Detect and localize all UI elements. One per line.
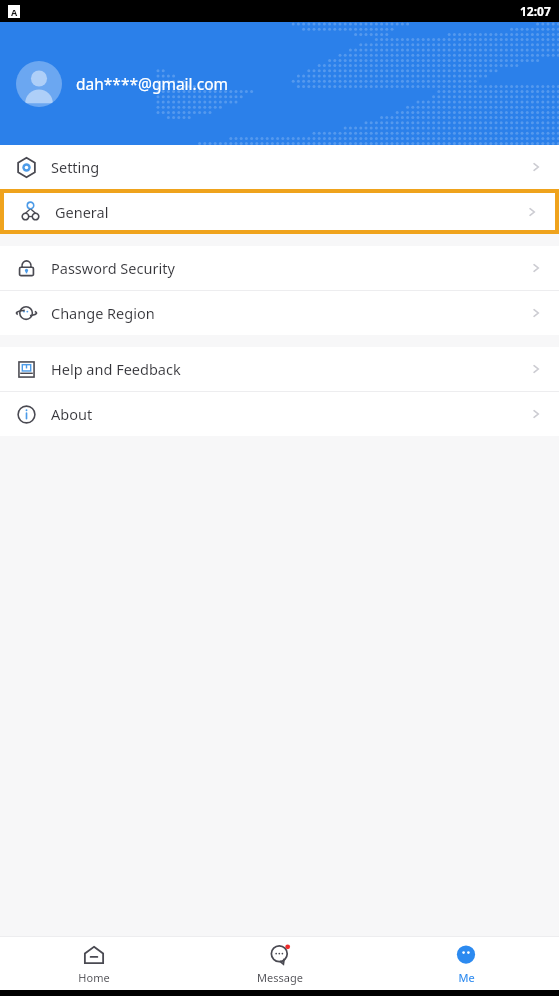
staticText: Message — [257, 970, 303, 985]
staticText: dah****@gmail.com — [76, 73, 229, 94]
button[interactable]: Password Security — [0, 246, 559, 290]
staticText: Change Region — [51, 303, 155, 323]
button[interactable]: Help and Feedback — [0, 347, 559, 391]
button[interactable]: Change Region — [0, 291, 559, 335]
staticText: Home — [78, 970, 110, 985]
staticText: General — [55, 202, 109, 222]
staticText: About — [51, 404, 93, 424]
staticText: A — [11, 6, 18, 18]
button[interactable]: Me — [373, 937, 559, 990]
button[interactable]: About — [0, 392, 559, 436]
button[interactable]: Message — [187, 937, 373, 990]
staticText: 12:07 — [520, 3, 551, 19]
button[interactable]: General — [4, 193, 555, 230]
button[interactable]: Home — [0, 937, 187, 990]
staticText: Me — [458, 970, 475, 985]
staticText: Help and Feedback — [51, 359, 181, 379]
staticText: Setting — [51, 157, 100, 177]
staticText: Password Security — [51, 258, 175, 278]
button[interactable]: Setting — [0, 145, 559, 189]
